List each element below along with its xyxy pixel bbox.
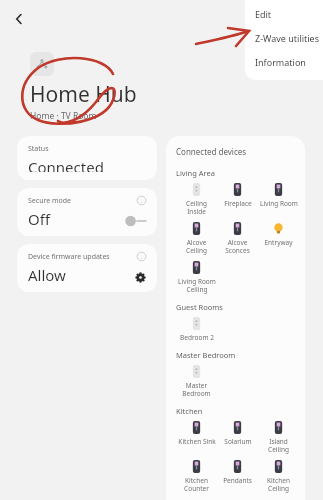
button[interactable]: Help: [137, 252, 146, 261]
button[interactable]: Island Ceiling: [258, 421, 299, 454]
button[interactable]: Living Room: [258, 183, 299, 208]
button[interactable]: Living Room Ceiling: [176, 261, 217, 294]
staticText: Allow: [28, 265, 66, 284]
button[interactable]: Information: [245, 50, 323, 74]
button[interactable]: Status: [17, 136, 157, 180]
staticText: Entryway: [264, 238, 293, 247]
staticText: Living Area: [176, 168, 215, 178]
staticText: Master Bedroom: [176, 350, 236, 360]
staticText: Kitchen Sink: [178, 437, 216, 446]
staticText: Fireplace: [224, 199, 252, 208]
staticText: Alcove Ceiling: [176, 238, 217, 255]
button[interactable]: Edit: [245, 2, 323, 26]
staticText: Alcove Sconces: [225, 238, 250, 255]
button[interactable]: Help: [137, 196, 146, 205]
staticText: Pendants: [223, 476, 252, 485]
button[interactable]: Fireplace: [217, 183, 258, 208]
button[interactable]: Firmware settings: [135, 272, 146, 283]
button[interactable]: Master Bedroom: [176, 365, 217, 398]
button[interactable]: Bedroom 2: [176, 317, 217, 342]
staticText: Connected: [28, 157, 104, 172]
button[interactable]: Kitchen Ceiling: [258, 460, 299, 493]
button[interactable]: Pendants: [217, 460, 258, 485]
staticText: Guest Rooms: [176, 302, 223, 312]
button[interactable]: Secure mode toggle: [124, 215, 146, 227]
button[interactable]: Device firmware updates: [17, 244, 157, 292]
staticText: Kitchen Ceiling: [267, 476, 290, 493]
staticText: Z-Wave utilities: [255, 32, 320, 44]
staticText: Living Room Ceiling: [178, 277, 216, 294]
staticText: Kitchen: [176, 406, 203, 416]
staticText: Solarium: [224, 437, 252, 446]
button[interactable]: Kitchen Counter: [176, 460, 217, 493]
button[interactable]: Z-Wave utilities: [245, 26, 323, 50]
staticText: Home Hub: [30, 80, 137, 109]
staticText: Living Room: [260, 199, 298, 208]
staticText: Ceiling Inside: [176, 199, 217, 216]
staticText: Off: [28, 209, 51, 228]
staticText: Information: [255, 56, 306, 68]
staticText: Master Bedroom: [182, 381, 211, 398]
staticText: Edit: [255, 8, 272, 20]
staticText: Secure mode: [28, 196, 72, 206]
button[interactable]: Entryway: [258, 222, 299, 247]
button[interactable]: Alcove Ceiling: [176, 222, 217, 255]
staticText: Bedroom 2: [180, 333, 214, 342]
button[interactable]: Secure mode: [17, 188, 157, 236]
staticText: Connected devices: [176, 146, 247, 157]
button[interactable]: Ceiling Inside: [176, 183, 217, 216]
staticText: Island Ceiling: [258, 437, 299, 454]
button[interactable]: Kitchen Sink: [176, 421, 217, 446]
staticText: Home · TV Room: [30, 110, 97, 122]
staticText: Device firmware updates: [28, 252, 110, 262]
button[interactable]: Back: [4, 4, 34, 34]
button[interactable]: Solarium: [217, 421, 258, 446]
button[interactable]: Alcove Sconces: [217, 222, 258, 255]
staticText: Kitchen Counter: [184, 476, 209, 493]
staticText: Status: [28, 144, 49, 154]
